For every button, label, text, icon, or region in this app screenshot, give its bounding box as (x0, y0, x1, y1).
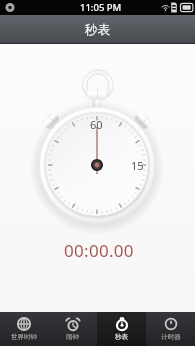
button[interactable]: 计时器 (146, 312, 195, 346)
staticText: 11:05 PM (80, 1, 122, 14)
staticText: 15 (131, 158, 144, 173)
button[interactable]: 秒表 (97, 312, 146, 346)
staticText: 00:00.00 (64, 239, 134, 262)
button[interactable]: 闹钟 (48, 312, 97, 346)
staticText: 闹钟 (66, 333, 79, 341)
staticText: 秒表 (85, 22, 110, 38)
staticText: 世界时钟 (11, 333, 37, 341)
button[interactable]: 世界时钟 (0, 312, 48, 346)
staticText: 60 (90, 117, 103, 132)
staticText: 秒表 (115, 333, 128, 341)
staticText: 计时器 (161, 333, 181, 341)
